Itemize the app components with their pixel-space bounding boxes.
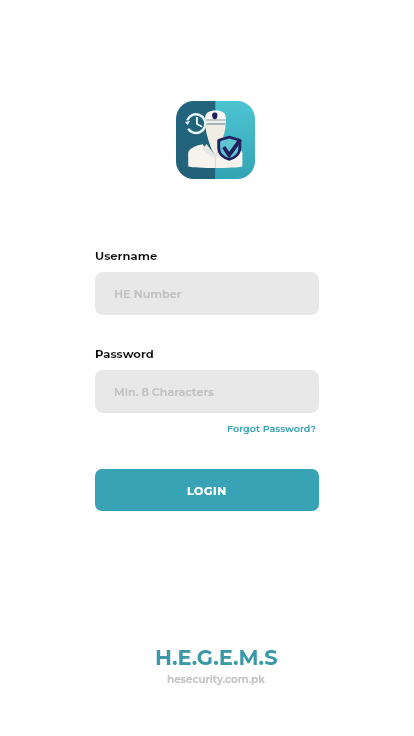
button[interactable]: Min. 8 Characters	[95, 370, 319, 413]
staticText: H.E.G.E.M.S	[155, 645, 278, 671]
staticText: LOGIN	[187, 484, 227, 497]
button[interactable]: LOGIN	[95, 469, 319, 511]
button[interactable]: Forgot Password?	[227, 423, 317, 435]
other: H.E.G.E.M.S logo	[176, 101, 255, 179]
staticText: Min. 8 Characters	[114, 385, 214, 399]
staticText: Username	[95, 249, 158, 263]
staticText: hesecurity.com.pk	[167, 673, 265, 686]
staticText: Password	[95, 347, 154, 361]
staticText: HE Number	[114, 287, 182, 301]
button[interactable]: HE Number	[95, 272, 319, 315]
staticText: Forgot Password?	[227, 423, 317, 435]
